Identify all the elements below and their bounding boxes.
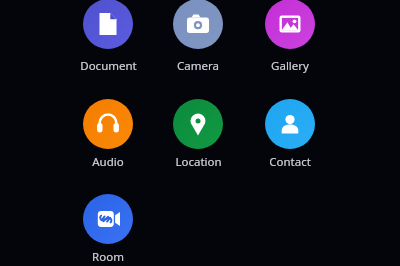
button[interactable]: Gallery xyxy=(245,58,335,74)
staticText: Location xyxy=(175,154,222,170)
button[interactable]: Gallery xyxy=(265,0,315,49)
staticText: Audio xyxy=(92,154,124,170)
button[interactable]: Location xyxy=(173,99,223,149)
button[interactable]: Audio xyxy=(83,99,133,149)
staticText: Camera xyxy=(177,58,219,74)
button[interactable]: Camera xyxy=(153,58,243,74)
button[interactable]: Room xyxy=(83,194,133,244)
staticText: Contact xyxy=(269,154,311,170)
staticText: Gallery xyxy=(271,58,309,74)
button[interactable]: Contact xyxy=(245,154,335,170)
button[interactable]: Document xyxy=(83,0,133,49)
button[interactable]: Audio xyxy=(63,154,153,170)
button[interactable]: Location xyxy=(153,154,243,170)
button[interactable]: Contact xyxy=(265,99,315,149)
staticText: Room xyxy=(92,249,124,265)
button[interactable]: Document xyxy=(63,58,153,74)
button[interactable]: Camera xyxy=(173,0,223,49)
staticText: Document xyxy=(80,58,137,74)
button[interactable]: Room xyxy=(63,249,153,265)
